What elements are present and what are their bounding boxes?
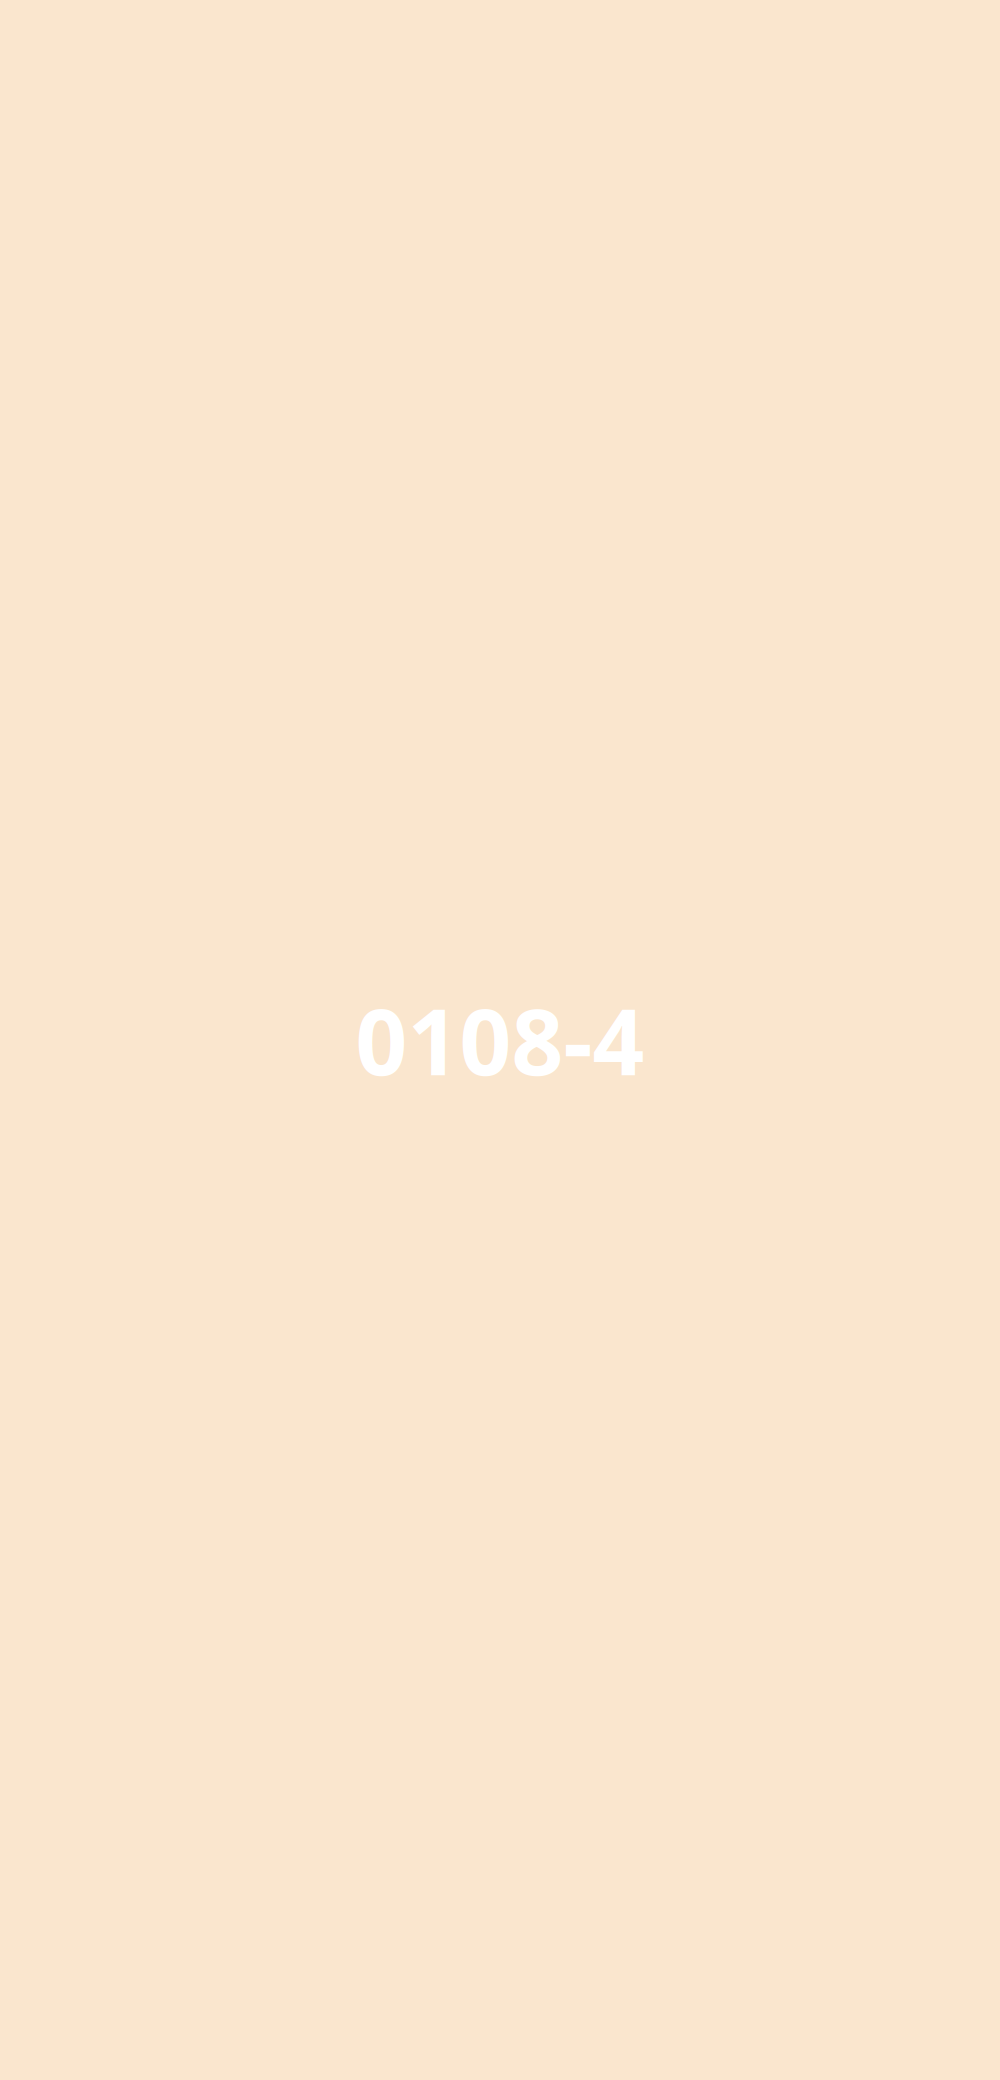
staticText: 0108-4 — [355, 980, 644, 1100]
